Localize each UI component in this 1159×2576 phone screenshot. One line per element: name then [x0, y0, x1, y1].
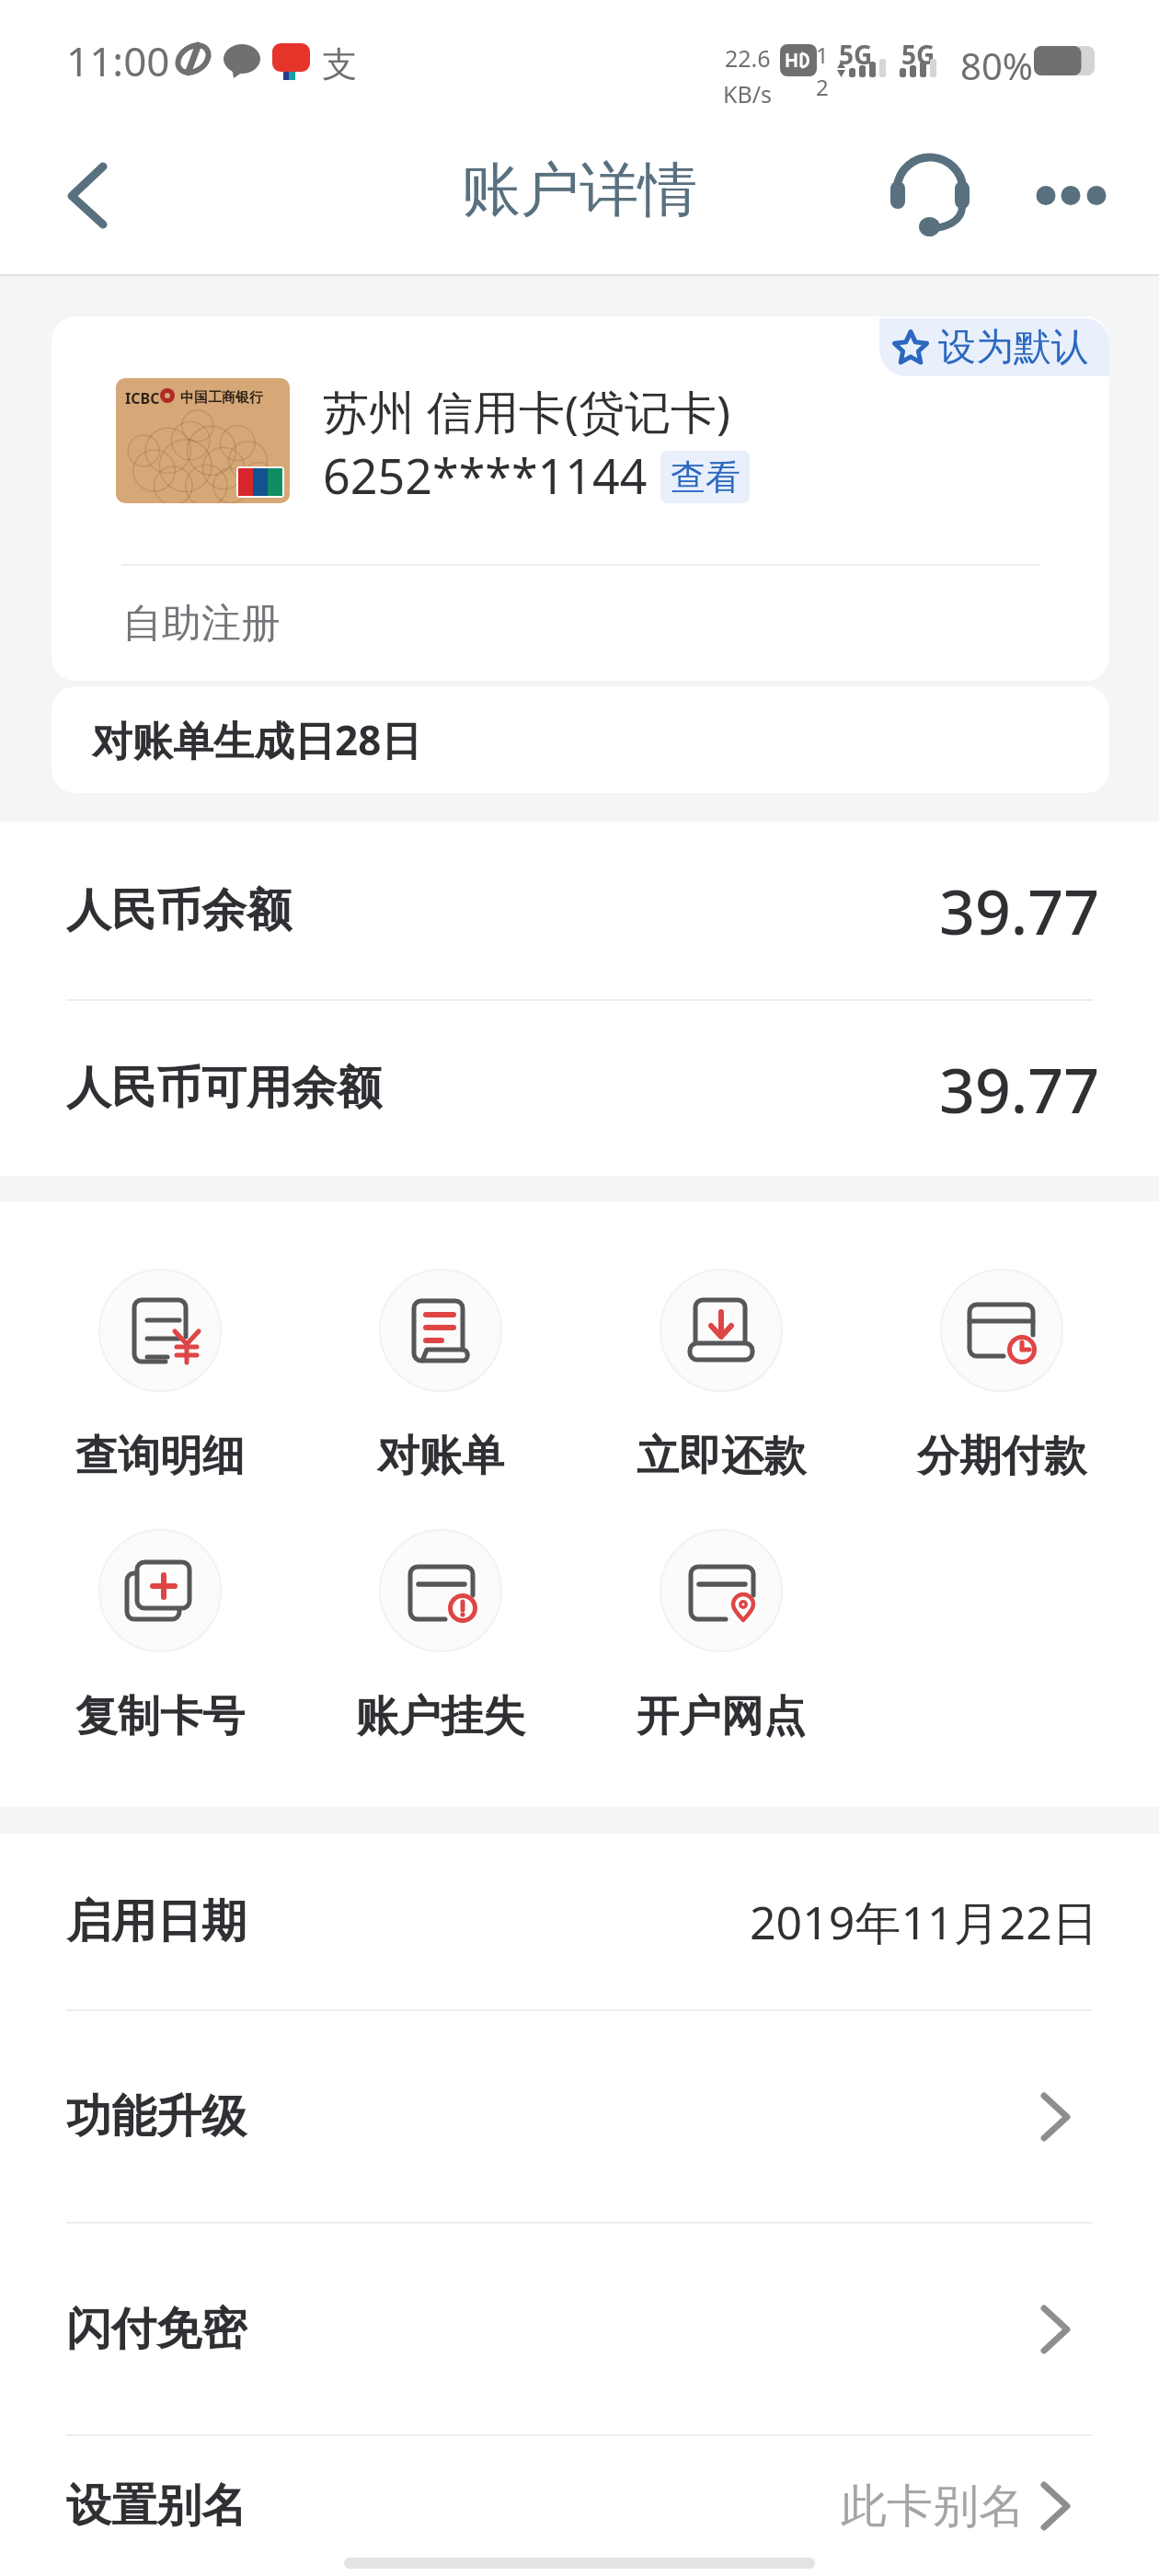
button[interactable]: 复制卡号 — [19, 1529, 300, 1743]
button[interactable]: 开户网点 — [580, 1529, 861, 1743]
button[interactable]: 闪付免密 — [0, 2224, 1159, 2434]
button[interactable]: Back — [40, 138, 142, 250]
button[interactable]: ICBC — [52, 316, 1109, 681]
staticText: 2019年11月22日 — [750, 1891, 1098, 1953]
staticText: 复制卡号 — [75, 1690, 245, 1743]
staticText: 苏州 信用卡(贷记卡) — [323, 380, 730, 443]
button[interactable]: 人民币可用余额 — [0, 1001, 1159, 1176]
staticText: 中国工商银行 — [180, 389, 263, 407]
button[interactable]: More options — [1021, 138, 1131, 247]
staticText: 设为默认 — [938, 324, 1089, 372]
staticText: 查看 — [671, 455, 740, 500]
staticText: 查询明细 — [75, 1430, 245, 1483]
button[interactable]: 对账单生成日28日 — [52, 686, 1109, 793]
staticText: 此卡别名 — [841, 2478, 1025, 2536]
staticText: 分期付款 — [917, 1430, 1086, 1483]
button[interactable]: 设置别名 — [0, 2436, 1159, 2576]
staticText: 2 — [816, 72, 829, 102]
staticText: 对账单生成日28日 — [92, 712, 422, 767]
staticText: 开户网点 — [637, 1690, 806, 1743]
staticText: KB/s — [723, 78, 773, 109]
button[interactable]: 启用日期 — [0, 1834, 1159, 2009]
staticText: 人民币可用余额 — [66, 1060, 382, 1117]
staticText: 80% — [960, 40, 1033, 90]
staticText: ICBC — [125, 388, 160, 408]
button[interactable]: 立即还款 — [580, 1269, 861, 1483]
staticText: 人民币余额 — [66, 882, 292, 939]
staticText: 11:00 — [66, 33, 170, 88]
staticText: 功能升级 — [66, 2088, 247, 2145]
staticText: 设置别名 — [66, 2478, 247, 2535]
staticText: 自助注册 — [122, 599, 281, 649]
button[interactable]: 账户挂失 — [300, 1529, 580, 1743]
button[interactable]: 功能升级 — [0, 2011, 1159, 2222]
staticText: 5G — [901, 37, 935, 72]
staticText: 22.6 — [725, 42, 771, 74]
staticText: 1 — [816, 40, 829, 70]
button[interactable]: 查看 — [660, 451, 750, 503]
staticText: 39.77 — [939, 1046, 1100, 1132]
staticText: 5G — [839, 37, 873, 72]
staticText: 39.77 — [939, 868, 1100, 953]
staticText: 账户挂失 — [356, 1690, 525, 1743]
staticText: 闪付免密 — [66, 2301, 247, 2358]
staticText: 立即还款 — [637, 1430, 806, 1483]
button[interactable]: 分期付款 — [861, 1269, 1142, 1483]
staticText: 对账单 — [377, 1430, 504, 1483]
button[interactable]: 查询明细 — [19, 1269, 300, 1483]
staticText: 支 — [322, 42, 357, 86]
button[interactable]: 设为默认 — [879, 318, 1109, 376]
staticText: 启用日期 — [66, 1893, 247, 1950]
button[interactable]: Customer service — [878, 138, 983, 267]
staticText: 6252****1144 — [323, 443, 648, 508]
button[interactable]: 对账单 — [300, 1269, 580, 1483]
staticText: 账户详情 — [462, 153, 697, 227]
button[interactable]: 人民币余额 — [0, 822, 1159, 999]
